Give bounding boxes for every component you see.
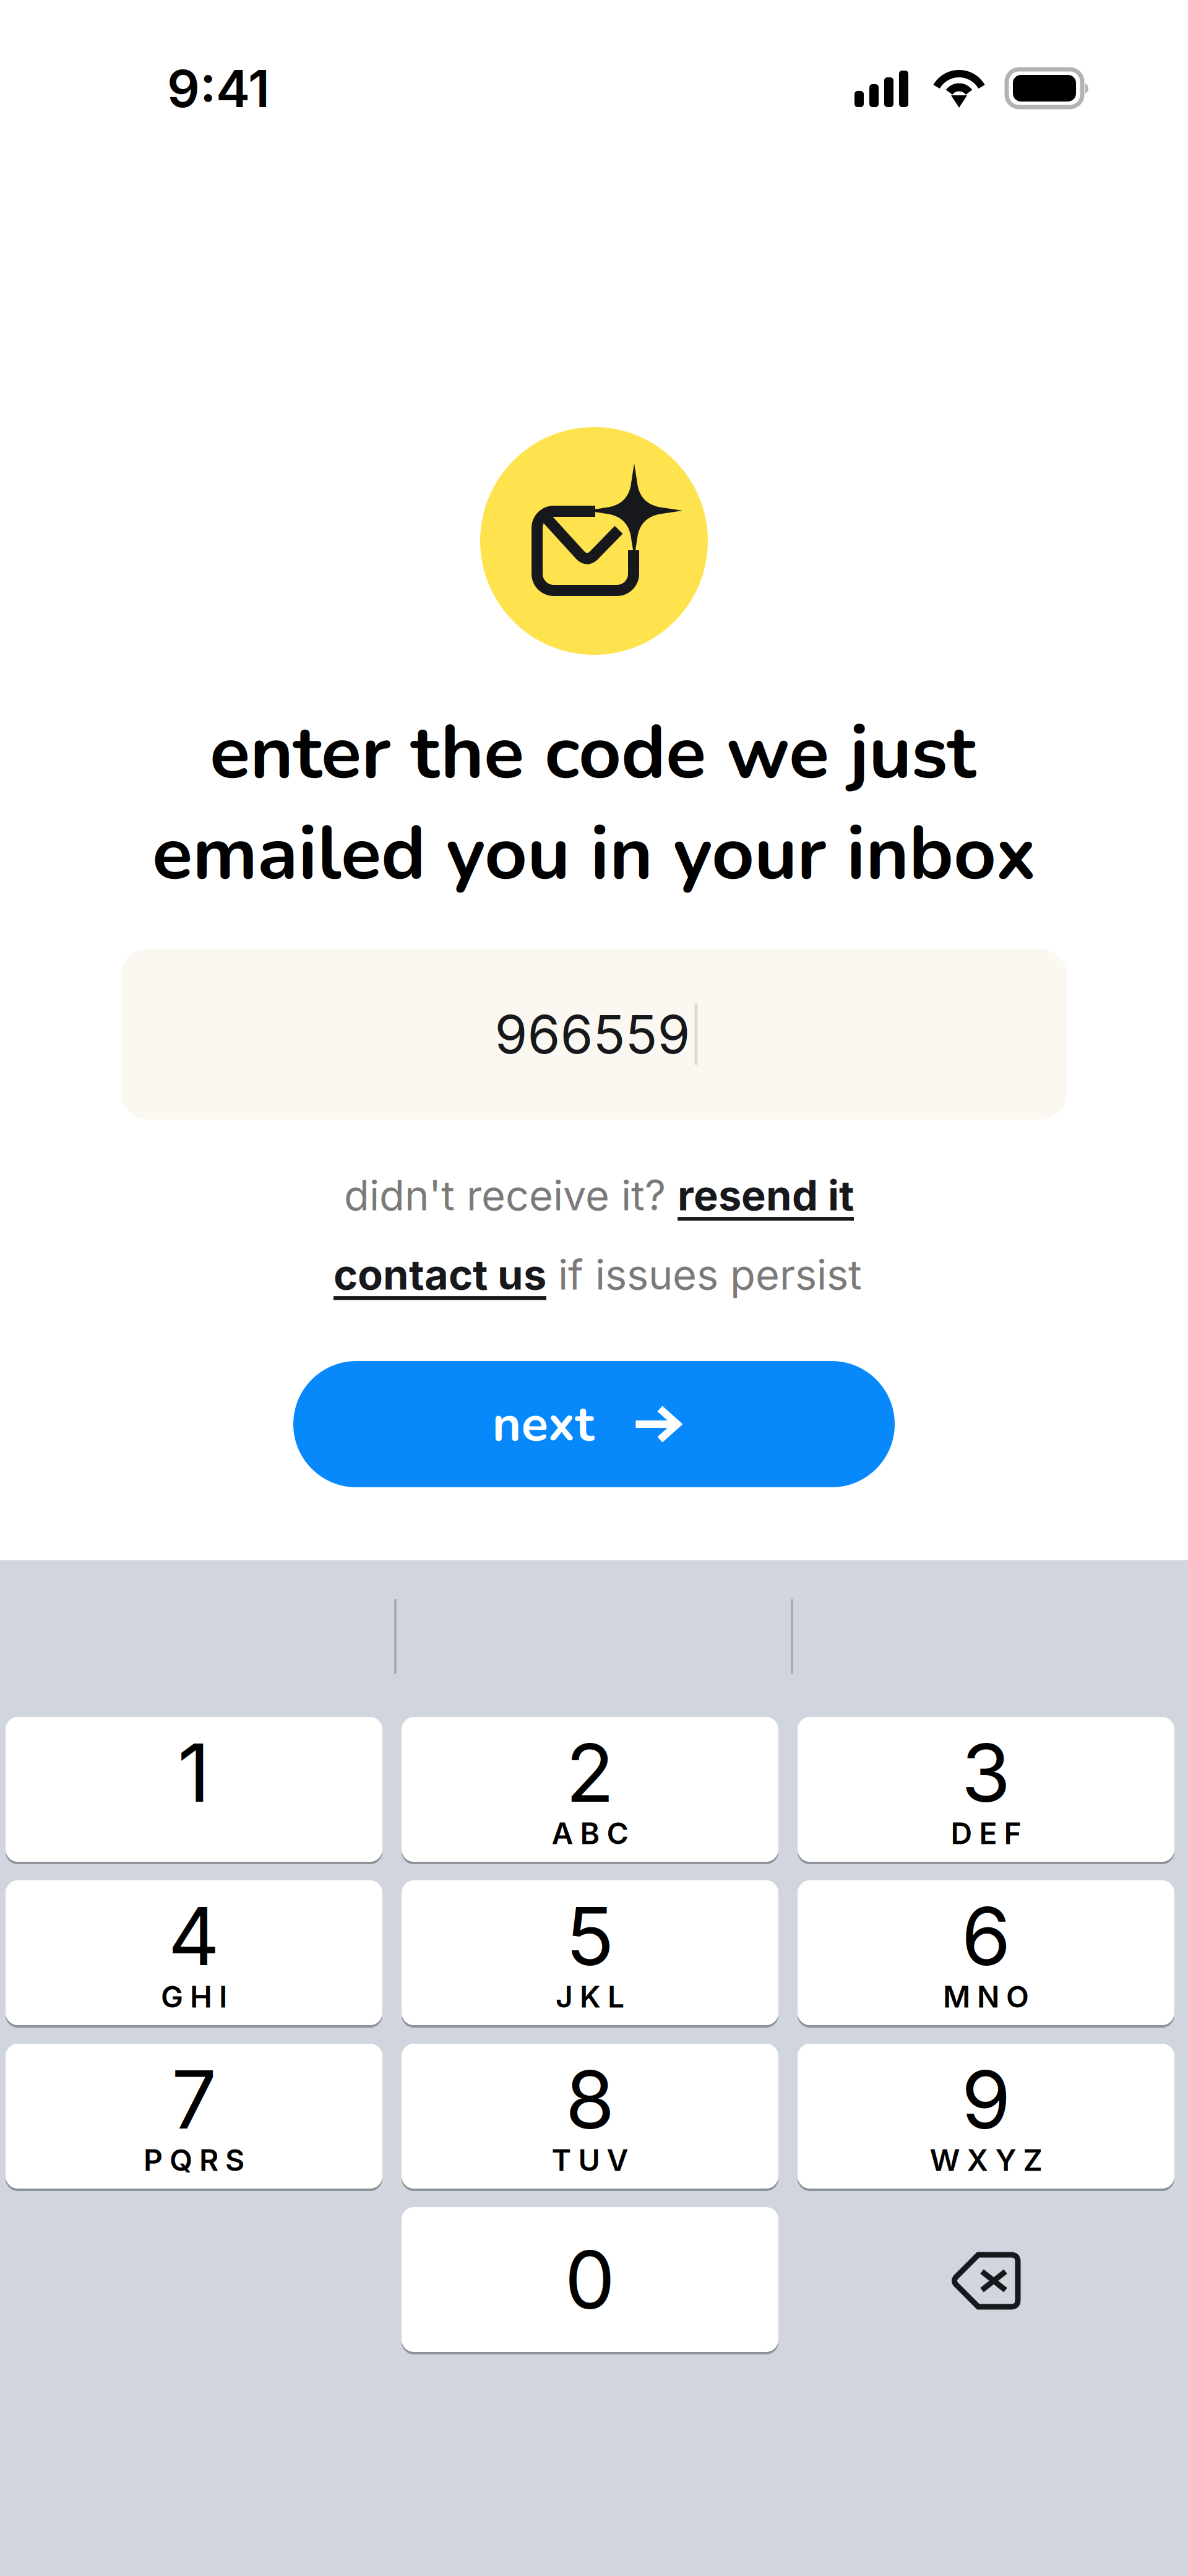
staticText: MNO: [943, 1979, 1029, 2015]
staticText: TUV: [552, 2142, 628, 2178]
button[interactable]: 9: [798, 2044, 1174, 2191]
staticText: 3: [961, 1724, 1011, 1821]
staticText: if issues persist: [546, 1250, 862, 1300]
staticText: ABC: [552, 1815, 628, 1851]
staticText: resend it: [678, 1170, 854, 1220]
staticText: 6: [961, 1888, 1011, 1984]
button[interactable]: 2: [402, 1717, 778, 1864]
button[interactable]: 5: [402, 1880, 778, 2028]
staticText: 9:41: [167, 58, 270, 119]
staticText: 2: [566, 1724, 614, 1821]
button[interactable]: 4: [6, 1880, 382, 2028]
button[interactable]: 1: [6, 1717, 382, 1864]
staticText: didn't receive it?: [344, 1170, 678, 1220]
staticText: 4: [168, 1888, 220, 1984]
button[interactable]: didn't receive it?: [344, 1170, 854, 1220]
button[interactable]: contact us: [334, 1250, 862, 1300]
staticText: 966559: [495, 1002, 690, 1066]
staticText: DEF: [951, 1815, 1021, 1851]
button[interactable]: 8: [402, 2044, 778, 2191]
staticText: PQRS: [144, 2142, 244, 2178]
staticText: JKL: [556, 1979, 624, 2015]
staticText: 1: [178, 1724, 210, 1821]
button[interactable]: 7: [6, 2044, 382, 2191]
staticText: WXYZ: [930, 2142, 1042, 2178]
staticText: 7: [171, 2051, 217, 2148]
staticText: next: [492, 1390, 594, 1458]
button[interactable]: next: [293, 1361, 895, 1487]
staticText: 8: [565, 2051, 615, 2148]
staticText: 9: [961, 2051, 1011, 2148]
button[interactable]: 0: [402, 2207, 778, 2354]
staticText: enter the code we just: [210, 702, 976, 804]
staticText: 0: [565, 2231, 615, 2328]
button[interactable]: 6: [798, 1880, 1174, 2028]
button[interactable]: Delete: [798, 2207, 1174, 2354]
staticText: emailed you in your inbox: [152, 803, 1036, 905]
staticText: 5: [566, 1888, 614, 1984]
button[interactable]: 3: [798, 1717, 1174, 1864]
staticText: GHI: [161, 1979, 227, 2015]
staticText: contact us: [334, 1250, 546, 1300]
